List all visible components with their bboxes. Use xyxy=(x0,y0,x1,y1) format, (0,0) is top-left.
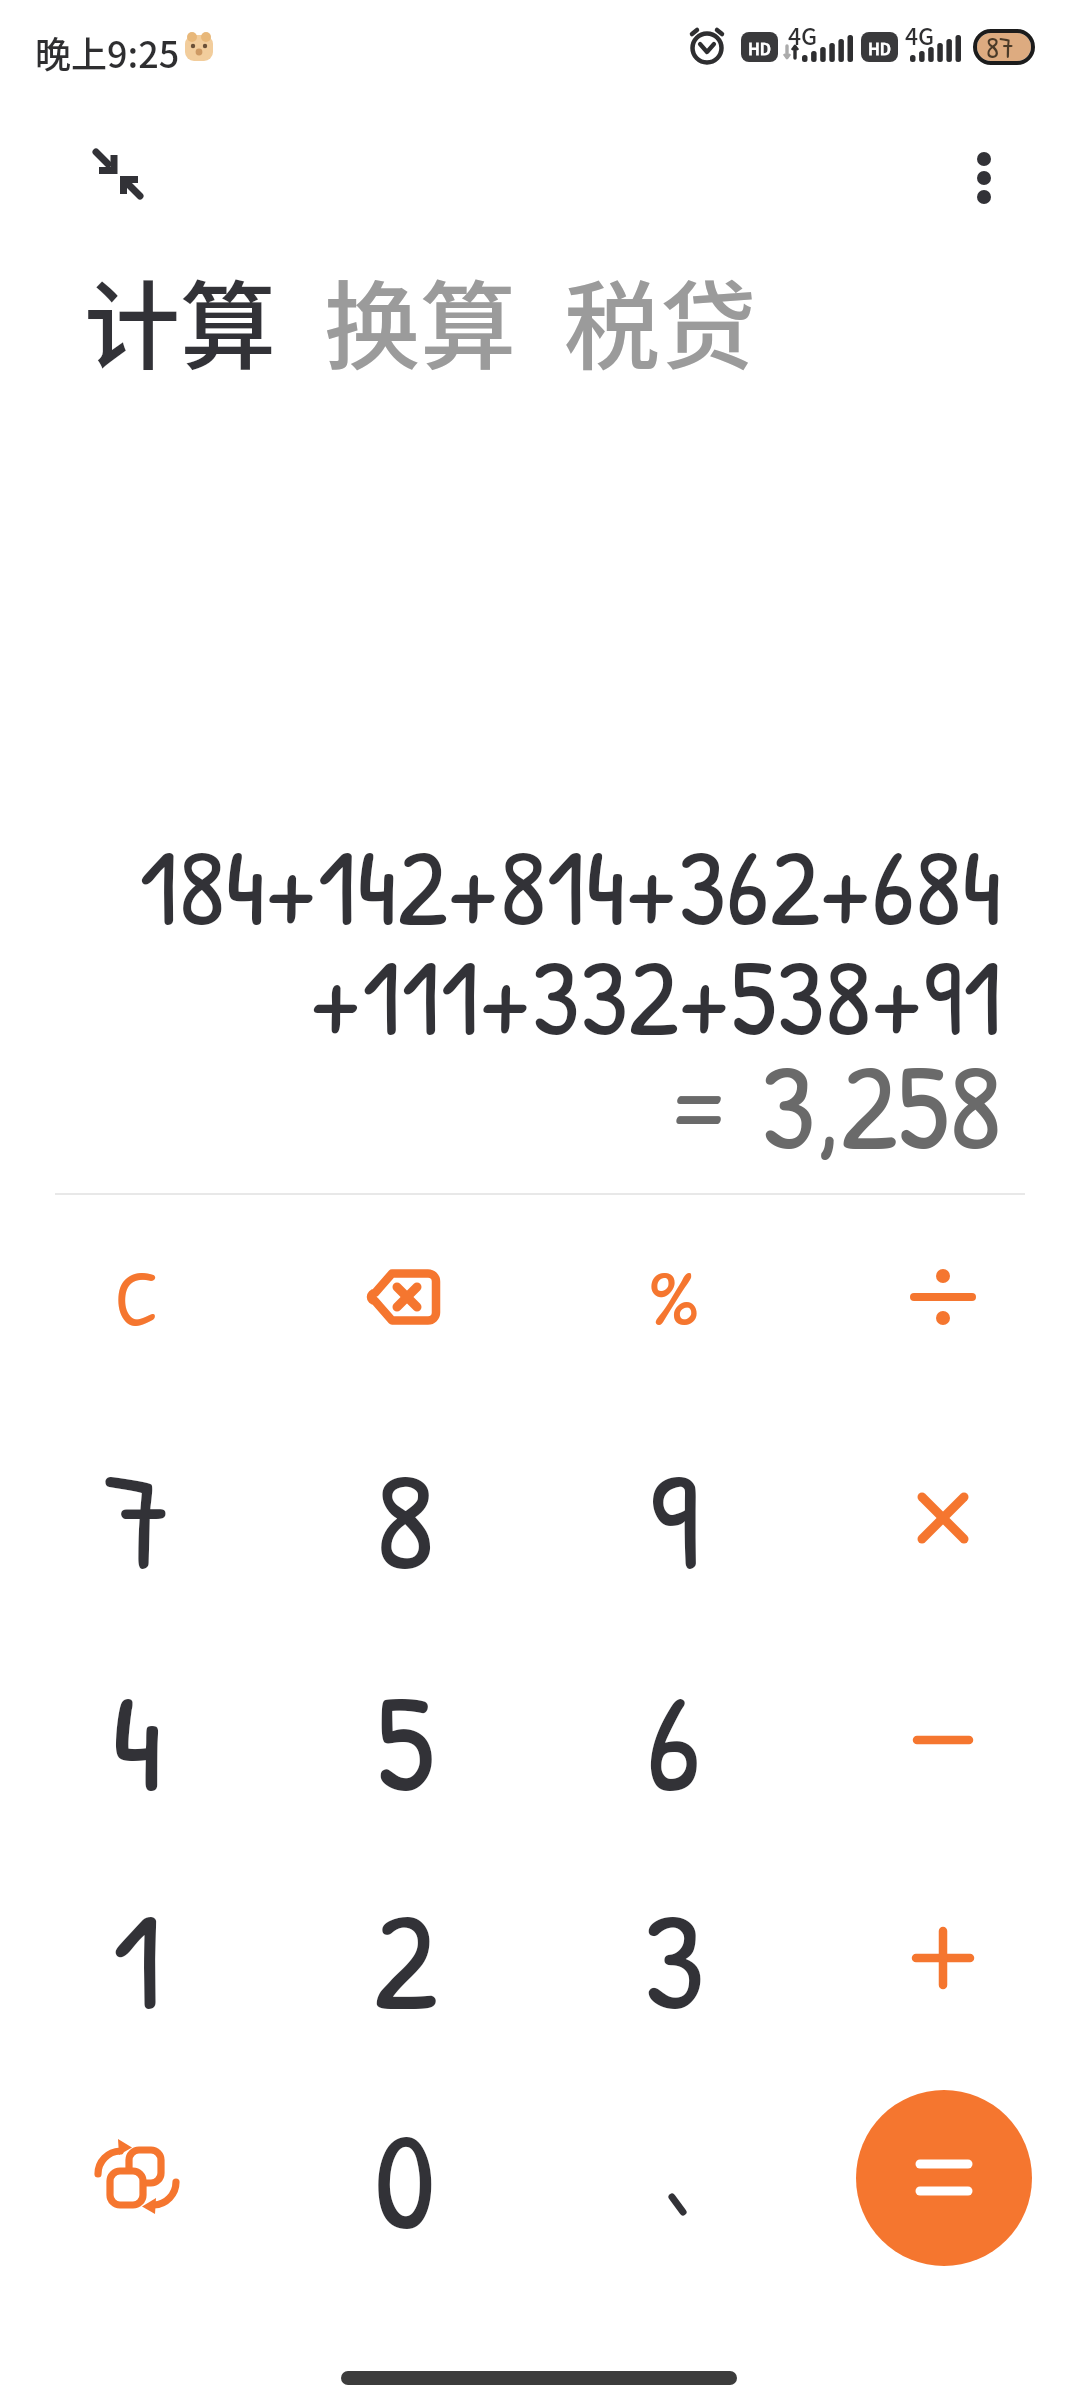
staticText: C xyxy=(115,1243,159,1351)
staticText: 6 xyxy=(646,1647,702,1834)
staticText: HD xyxy=(748,36,772,59)
button[interactable] xyxy=(833,1640,1053,1840)
staticText: 9 xyxy=(649,1425,700,1612)
button[interactable] xyxy=(833,1418,1053,1618)
button[interactable]: 5 xyxy=(295,1640,515,1840)
button[interactable]: 2 xyxy=(295,1858,515,2058)
staticText: 5 xyxy=(376,1647,435,1834)
staticText: 3 xyxy=(643,1865,705,2052)
staticText: +111+332+538+91 xyxy=(310,922,1002,1068)
staticText: 7 xyxy=(103,1425,172,1612)
staticText: 87 xyxy=(986,27,1014,68)
staticText: 4G xyxy=(905,18,935,51)
staticText: 税贷 xyxy=(564,250,756,389)
button[interactable]: 税贷 xyxy=(564,250,756,389)
staticText: % xyxy=(648,1243,700,1351)
staticText: 8 xyxy=(375,1425,435,1612)
staticText: = 3,258 xyxy=(663,1022,1002,1187)
button[interactable] xyxy=(833,1197,1053,1397)
button[interactable]: 8 xyxy=(295,1418,515,1618)
button[interactable]: 1 xyxy=(27,1858,247,2058)
staticText: 4 xyxy=(111,1647,163,1834)
button[interactable] xyxy=(564,2078,784,2278)
button[interactable]: C xyxy=(27,1197,247,1397)
staticText: 4G xyxy=(788,18,818,51)
staticText: 184+142+814+362+684 xyxy=(139,812,1002,958)
button[interactable] xyxy=(295,1197,515,1397)
button[interactable]: 0 xyxy=(295,2078,515,2278)
button[interactable] xyxy=(960,150,1008,198)
staticText: HD xyxy=(868,36,892,59)
button[interactable] xyxy=(27,2078,247,2278)
button[interactable]: 计算 xyxy=(84,250,276,389)
staticText: 0 xyxy=(374,2085,436,2272)
button[interactable]: % xyxy=(564,1197,784,1397)
button[interactable]: 7 xyxy=(27,1418,247,1618)
button[interactable]: 6 xyxy=(564,1640,784,1840)
button[interactable] xyxy=(833,1858,1053,2058)
staticText: 计算 xyxy=(84,250,276,389)
staticText: 2 xyxy=(373,1865,438,2052)
button[interactable]: 换算 xyxy=(324,250,516,389)
button[interactable]: 4 xyxy=(27,1640,247,1840)
button[interactable] xyxy=(856,2090,1032,2266)
button[interactable]: 3 xyxy=(564,1858,784,2058)
staticText: 换算 xyxy=(324,250,516,389)
button[interactable] xyxy=(90,146,146,202)
staticText: 晚上9:25 xyxy=(35,26,180,78)
button[interactable]: 9 xyxy=(564,1418,784,1618)
staticText: 1 xyxy=(112,1865,163,2052)
